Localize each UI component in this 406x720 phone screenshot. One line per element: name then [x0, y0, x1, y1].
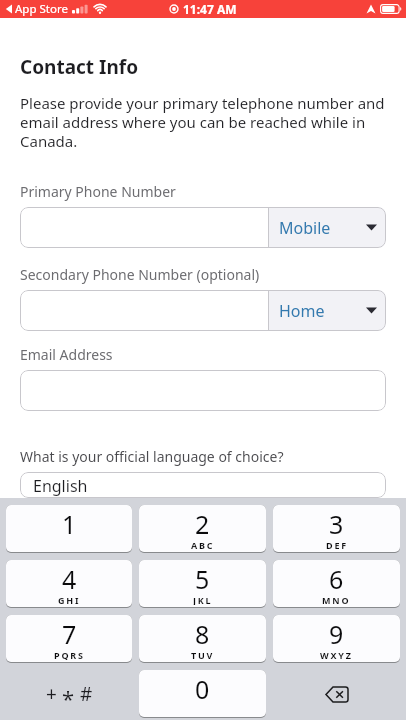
- button[interactable]: 5: [139, 560, 266, 608]
- staticText: 5: [195, 562, 210, 596]
- staticText: 4: [62, 562, 77, 596]
- button[interactable]: 0: [139, 670, 266, 718]
- staticText: 2: [195, 507, 210, 541]
- button[interactable]: 4: [6, 560, 132, 608]
- staticText: JKL: [193, 594, 213, 605]
- staticText: 7: [62, 617, 77, 651]
- staticText: TUV: [191, 649, 215, 660]
- staticText: App Store: [15, 1, 68, 17]
- staticText: Contact Info: [20, 54, 139, 80]
- button[interactable]: 3: [273, 505, 400, 553]
- staticText: 9: [329, 617, 344, 651]
- button[interactable]: 7: [6, 615, 132, 663]
- button[interactable]: Home: [268, 290, 386, 331]
- staticText: 8: [195, 617, 210, 651]
- staticText: Secondary Phone Number (optional): [20, 265, 260, 284]
- staticText: +: [46, 681, 57, 707]
- staticText: 6: [329, 562, 344, 596]
- button[interactable]: 2: [139, 505, 266, 553]
- staticText: Primary Phone Number: [20, 182, 176, 201]
- button[interactable]: 1: [6, 505, 132, 553]
- staticText: PQRS: [54, 649, 85, 660]
- staticText: WXYZ: [320, 649, 353, 660]
- staticText: 1: [62, 507, 77, 541]
- staticText: GHI: [58, 594, 81, 605]
- staticText: #: [80, 681, 93, 707]
- button[interactable]: +: [6, 670, 132, 718]
- button[interactable]: [20, 370, 386, 411]
- staticText: Email Address: [20, 345, 113, 364]
- button[interactable]: 9: [273, 615, 400, 663]
- button[interactable]: [273, 670, 400, 718]
- button[interactable]: 6: [273, 560, 400, 608]
- staticText: MNO: [322, 594, 351, 605]
- button[interactable]: [20, 290, 268, 331]
- staticText: What is your official language of choice…: [20, 447, 284, 466]
- staticText: DEF: [326, 539, 348, 550]
- staticText: English: [33, 475, 88, 497]
- staticText: Please provide your primary telephone nu…: [20, 93, 385, 151]
- staticText: 0: [195, 672, 210, 706]
- staticText: 11:47 AM: [183, 1, 237, 17]
- staticText: 3: [329, 507, 344, 541]
- staticText: *: [62, 683, 75, 713]
- button[interactable]: Mobile: [268, 207, 386, 248]
- button[interactable]: [20, 207, 268, 248]
- staticText: Home: [279, 300, 325, 322]
- button[interactable]: English: [20, 472, 386, 498]
- staticText: ABC: [191, 539, 215, 550]
- staticText: Mobile: [279, 217, 331, 239]
- button[interactable]: 8: [139, 615, 266, 663]
